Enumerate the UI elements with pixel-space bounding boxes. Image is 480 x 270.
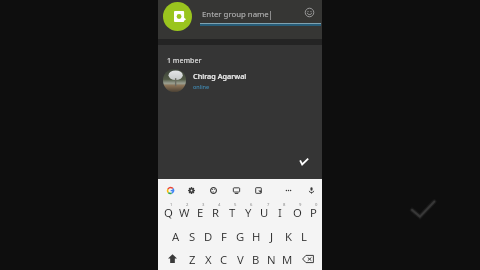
staticText: 1	[170, 202, 173, 208]
button[interactable]: P	[305, 201, 321, 223]
button[interactable]: Q	[160, 201, 176, 223]
button[interactable]: X	[200, 248, 216, 270]
staticText: X	[205, 252, 212, 267]
staticText: T	[229, 205, 236, 220]
button[interactable]: Clipboard	[252, 184, 264, 196]
staticText: C	[220, 252, 228, 267]
staticText: K	[285, 229, 292, 244]
button[interactable]: J	[264, 225, 280, 247]
button[interactable]: C	[216, 248, 232, 270]
staticText: Enter group name	[202, 9, 269, 20]
staticText: G	[236, 229, 245, 244]
button[interactable]: U	[256, 201, 272, 223]
staticText: M	[282, 252, 293, 267]
staticText: 1 member	[167, 56, 202, 66]
button[interactable]: K	[280, 225, 296, 247]
button[interactable]: Search	[164, 184, 176, 196]
button[interactable]: Z	[184, 248, 200, 270]
button[interactable]: GIF	[230, 184, 242, 196]
staticText: 0	[315, 202, 318, 208]
staticText: 3	[202, 202, 205, 208]
button[interactable]: N	[263, 248, 279, 270]
staticText: B	[252, 252, 260, 267]
staticText: 4	[218, 202, 221, 208]
button[interactable]: Backspace	[302, 253, 314, 265]
staticText: V	[237, 252, 244, 267]
button[interactable]: F	[216, 225, 232, 247]
button[interactable]: Settings	[185, 184, 197, 196]
staticText: Chirag Agarwal	[193, 71, 247, 81]
staticText: 8	[283, 202, 286, 208]
button[interactable]: Chirag Agarwal	[158, 66, 322, 94]
button[interactable]: D	[200, 225, 216, 247]
button[interactable]: Voice input	[305, 184, 317, 196]
button[interactable]: Emoji	[305, 8, 314, 17]
button[interactable]: More	[282, 184, 294, 196]
button[interactable]: H	[248, 225, 264, 247]
staticText: W	[179, 205, 190, 220]
staticText: P	[310, 205, 317, 220]
button[interactable]: Add group photo	[163, 2, 192, 31]
staticText: Y	[245, 205, 252, 220]
button[interactable]: E	[192, 201, 208, 223]
staticText: D	[204, 229, 213, 244]
button[interactable]: B	[248, 248, 264, 270]
button[interactable]: A	[168, 225, 184, 247]
button[interactable]: W	[176, 201, 192, 223]
button[interactable]: M	[279, 248, 295, 270]
staticText: 5	[234, 202, 237, 208]
staticText: H	[252, 229, 261, 244]
staticText: U	[260, 205, 269, 220]
button[interactable]: Create group	[296, 153, 310, 167]
button[interactable]: T	[224, 201, 240, 223]
button[interactable]: Shift	[168, 254, 177, 263]
staticText: 7	[267, 202, 270, 208]
button[interactable]: V	[232, 248, 248, 270]
staticText: Q	[164, 205, 173, 220]
staticText: I	[278, 205, 282, 220]
staticText: Z	[189, 252, 196, 267]
button[interactable]: R	[208, 201, 224, 223]
staticText: 9	[299, 202, 302, 208]
staticText: A	[172, 229, 180, 244]
button[interactable]: Stickers	[207, 184, 219, 196]
staticText: 2	[186, 202, 189, 208]
staticText: 6	[250, 202, 253, 208]
staticText: F	[221, 229, 227, 244]
button[interactable]: I	[272, 201, 288, 223]
button[interactable]: S	[184, 225, 200, 247]
button[interactable]: O	[289, 201, 305, 223]
staticText: J	[270, 229, 274, 244]
button[interactable]: L	[296, 225, 312, 247]
staticText: online	[193, 83, 210, 90]
button[interactable]: G	[232, 225, 248, 247]
staticText: E	[197, 205, 204, 220]
staticText: N	[267, 252, 276, 267]
staticText: L	[301, 229, 307, 244]
button[interactable]: Y	[240, 201, 256, 223]
staticText: O	[293, 205, 302, 220]
staticText: R	[212, 205, 220, 220]
staticText: S	[189, 229, 196, 244]
